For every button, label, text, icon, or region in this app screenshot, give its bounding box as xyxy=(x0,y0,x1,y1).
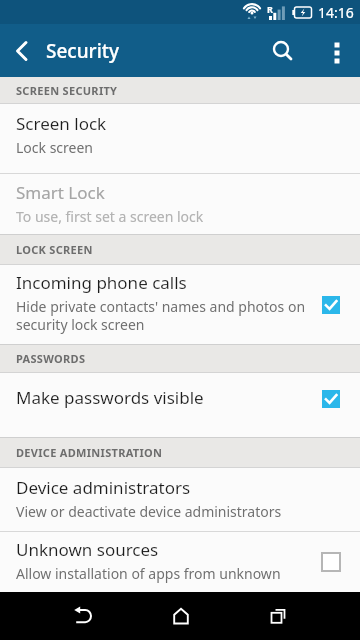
staticText: Make passwords visible xyxy=(16,386,204,409)
button[interactable] xyxy=(314,24,360,77)
staticText: Security xyxy=(46,38,120,64)
button[interactable] xyxy=(229,592,326,640)
staticText: R xyxy=(267,3,273,15)
staticText: Smart Lock xyxy=(16,181,105,204)
staticText: DEVICE ADMINISTRATION xyxy=(16,445,163,460)
button[interactable]: Make passwords visible xyxy=(0,373,360,437)
staticText: Device administrators xyxy=(16,476,191,499)
staticText: LOCK SCREEN xyxy=(16,242,93,257)
button[interactable]: Smart Lock xyxy=(0,174,360,234)
button[interactable] xyxy=(34,592,132,640)
button[interactable]: Unknown sources xyxy=(0,532,360,592)
staticText: To use, first set a screen lock xyxy=(16,207,204,226)
button[interactable] xyxy=(132,592,229,640)
staticText: Screen lock xyxy=(16,112,107,135)
staticText: Incoming phone calls xyxy=(16,271,187,294)
staticText: Allow installation of apps from unknown xyxy=(16,564,281,583)
staticText: View or deactivate device administrators xyxy=(16,502,282,521)
staticText: Hide private contacts' names and photos … xyxy=(16,297,308,334)
staticText: PASSWORDS xyxy=(16,351,86,366)
button[interactable]: Device administrators xyxy=(0,468,360,531)
button[interactable] xyxy=(252,24,314,77)
staticText: Lock screen xyxy=(16,138,94,157)
staticText: 14:16 xyxy=(318,3,354,22)
staticText: SCREEN SECURITY xyxy=(16,83,118,98)
button[interactable] xyxy=(0,24,46,77)
button[interactable]: Incoming phone calls xyxy=(0,265,360,344)
button[interactable]: Screen lock xyxy=(0,104,360,173)
staticText: Unknown sources xyxy=(16,538,159,561)
